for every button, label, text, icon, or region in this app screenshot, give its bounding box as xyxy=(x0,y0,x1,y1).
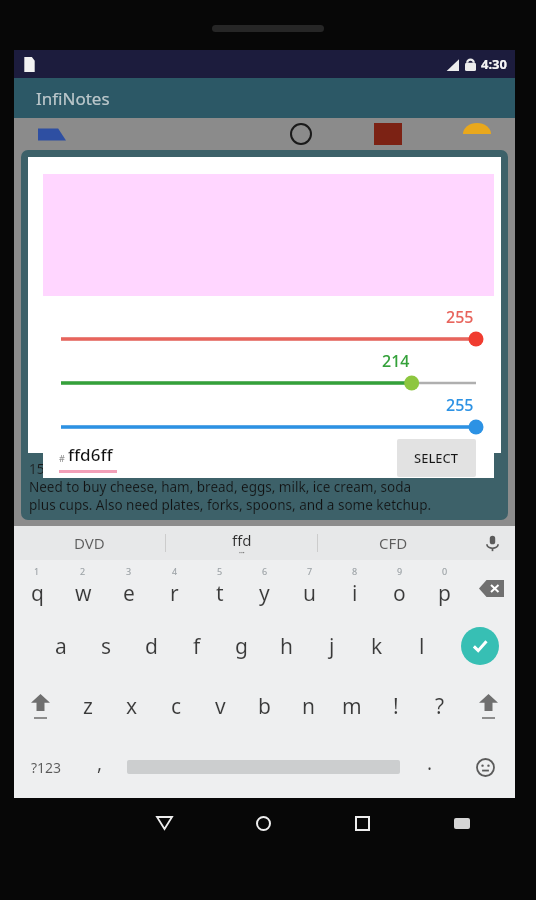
button[interactable]: f xyxy=(174,616,219,676)
button[interactable]: m xyxy=(330,676,374,736)
staticText: 0 xyxy=(442,565,448,577)
staticText: p xyxy=(438,579,451,608)
staticText: i xyxy=(352,579,358,608)
button[interactable]: l xyxy=(399,616,444,676)
staticText: d xyxy=(145,632,158,661)
staticText: 4 xyxy=(172,565,178,577)
staticText: m xyxy=(342,692,362,721)
staticText: Need to buy cheese, ham, bread, eggs, mi… xyxy=(29,478,412,496)
staticText: 1 xyxy=(34,565,40,577)
button[interactable]: CFD xyxy=(318,526,469,560)
button[interactable]: v xyxy=(198,676,242,736)
staticText: s xyxy=(101,632,112,661)
staticText: 6 xyxy=(262,565,268,577)
staticText: . xyxy=(427,750,433,776)
button[interactable]: Enter xyxy=(444,616,515,676)
button[interactable]: Shift xyxy=(14,676,66,736)
staticText: z xyxy=(83,692,93,721)
button[interactable]: 214 xyxy=(43,350,494,394)
staticText: 8 xyxy=(352,565,358,577)
button[interactable]: Switch keyboard xyxy=(412,798,511,848)
staticText: w xyxy=(75,579,92,608)
button[interactable]: Shift xyxy=(462,676,515,736)
staticText: 255 xyxy=(446,306,474,328)
staticText: c xyxy=(171,692,182,721)
button[interactable]: c xyxy=(154,676,198,736)
button[interactable]: d xyxy=(129,616,174,676)
staticText: # xyxy=(59,452,65,464)
staticText: InfiNotes xyxy=(36,87,110,110)
staticText: u xyxy=(303,579,316,608)
staticText: ?123 xyxy=(31,758,62,777)
staticText: DVD xyxy=(74,533,105,553)
button[interactable]: SELECT xyxy=(397,439,476,477)
button[interactable]: k xyxy=(354,616,399,676)
staticText: 3 xyxy=(126,565,132,577)
button[interactable]: . xyxy=(405,736,455,798)
button[interactable]: 15-05-2016 04:25:20 PM xyxy=(21,150,508,520)
staticText: plus cups. Also need plates, forks, spoo… xyxy=(29,496,432,514)
button[interactable]: Space xyxy=(121,736,405,798)
button[interactable]: DVD xyxy=(14,526,165,560)
staticText: g xyxy=(235,632,248,661)
button[interactable]: 0 xyxy=(422,560,467,616)
staticText: l xyxy=(419,632,425,661)
staticText: n xyxy=(302,692,315,721)
button[interactable]: 255 xyxy=(43,394,494,438)
button[interactable]: 3 xyxy=(106,560,152,616)
button[interactable]: s xyxy=(84,616,129,676)
staticText: a xyxy=(55,632,67,661)
button[interactable]: 9 xyxy=(377,560,422,616)
button[interactable]: Voice input xyxy=(469,526,515,560)
button[interactable]: 5 xyxy=(197,560,242,616)
staticText: r xyxy=(170,579,179,608)
button[interactable]: j xyxy=(309,616,354,676)
button[interactable]: Emoji xyxy=(455,736,515,798)
staticText: , xyxy=(97,750,103,776)
button[interactable]: 6 xyxy=(242,560,287,616)
button[interactable]: ?123 xyxy=(14,736,79,798)
button[interactable]: Recents xyxy=(313,798,412,848)
staticText: 7 xyxy=(307,565,313,577)
button[interactable]: Backspace xyxy=(467,560,515,616)
staticText: 214 xyxy=(382,350,410,372)
staticText: e xyxy=(123,579,135,608)
staticText: 15-05-2016 04:25:20 PM xyxy=(29,460,181,478)
button[interactable]: 255 xyxy=(43,306,494,350)
staticText: CFD xyxy=(379,533,408,553)
button[interactable]: 2 xyxy=(60,560,106,616)
staticText: 255 xyxy=(446,394,474,416)
button[interactable]: , xyxy=(79,736,121,798)
staticText: f xyxy=(193,632,201,661)
staticText: 4:30 xyxy=(481,55,507,73)
staticText: x xyxy=(126,692,138,721)
button[interactable]: # xyxy=(59,443,117,473)
button[interactable]: 7 xyxy=(287,560,332,616)
staticText: ••• xyxy=(239,550,245,557)
staticText: ffd xyxy=(232,530,252,550)
staticText: h xyxy=(280,632,293,661)
button[interactable]: h xyxy=(264,616,309,676)
button[interactable]: ? xyxy=(418,676,462,736)
button[interactable]: Home xyxy=(214,798,313,848)
button[interactable]: a xyxy=(38,616,84,676)
button[interactable]: ffd xyxy=(166,526,317,560)
button[interactable]: ! xyxy=(374,676,418,736)
button[interactable]: Back xyxy=(115,798,214,848)
button[interactable]: x xyxy=(110,676,154,736)
staticText: y xyxy=(259,579,270,608)
button[interactable]: g xyxy=(219,616,264,676)
button[interactable]: z xyxy=(66,676,110,736)
button[interactable]: 8 xyxy=(332,560,377,616)
staticText: k xyxy=(371,632,383,661)
button[interactable]: b xyxy=(242,676,286,736)
staticText: ? xyxy=(435,692,445,721)
button[interactable]: 1 xyxy=(14,560,60,616)
staticText: v xyxy=(215,692,226,721)
button[interactable]: 4 xyxy=(152,560,197,616)
button[interactable]: n xyxy=(286,676,330,736)
staticText: t xyxy=(216,579,224,608)
staticText: ! xyxy=(393,692,399,721)
staticText: o xyxy=(393,579,406,608)
staticText: j xyxy=(329,632,335,661)
